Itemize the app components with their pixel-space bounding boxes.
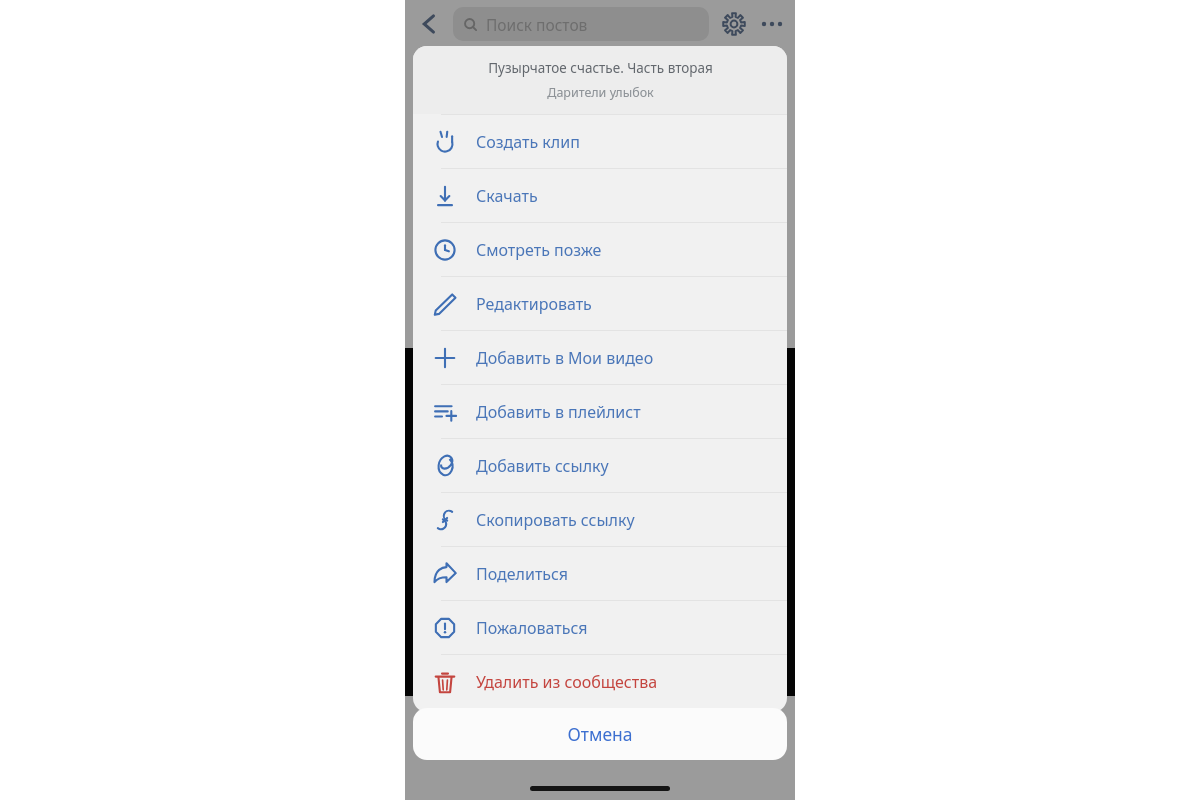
staticText: Смотреть позже xyxy=(476,239,602,261)
staticText: Создать клип xyxy=(476,131,580,153)
button[interactable]: Поделиться xyxy=(413,547,787,600)
staticText: Отмена xyxy=(567,722,633,746)
button[interactable]: Ещё xyxy=(755,7,789,41)
staticText: Добавить в плейлист xyxy=(476,401,641,423)
button[interactable]: Создать клип xyxy=(413,115,787,168)
button[interactable]: Скопировать ссылку xyxy=(413,493,787,546)
staticText: Дарители улыбок xyxy=(547,84,654,101)
staticText: Редактировать xyxy=(476,293,592,315)
staticText: Поделиться xyxy=(476,563,569,585)
staticText: Поиск постов xyxy=(486,14,588,35)
button[interactable]: Добавить ссылку xyxy=(413,439,787,492)
button[interactable]: Добавить в плейлист xyxy=(413,385,787,438)
staticText: Удалить из сообщества xyxy=(476,671,658,693)
staticText: Скачать xyxy=(476,185,538,207)
button[interactable]: Назад xyxy=(411,6,447,42)
button[interactable]: Поиск постов xyxy=(453,7,709,41)
button[interactable]: Редактировать xyxy=(413,277,787,330)
button[interactable]: Удалить из сообщества xyxy=(413,655,787,708)
button[interactable]: Пожаловаться xyxy=(413,601,787,654)
button[interactable]: Смотреть позже xyxy=(413,223,787,276)
staticText: Пожаловаться xyxy=(476,617,588,639)
button[interactable]: Настройки xyxy=(717,7,751,41)
staticText: Скопировать ссылку xyxy=(476,509,635,531)
staticText: Пузырчатое счастье. Часть вторая xyxy=(488,59,713,77)
button[interactable]: Добавить в Мои видео xyxy=(413,331,787,384)
button[interactable]: Скачать xyxy=(413,169,787,222)
button[interactable]: Отмена xyxy=(413,708,787,760)
staticText: Добавить ссылку xyxy=(476,455,609,477)
staticText: Добавить в Мои видео xyxy=(476,347,654,369)
